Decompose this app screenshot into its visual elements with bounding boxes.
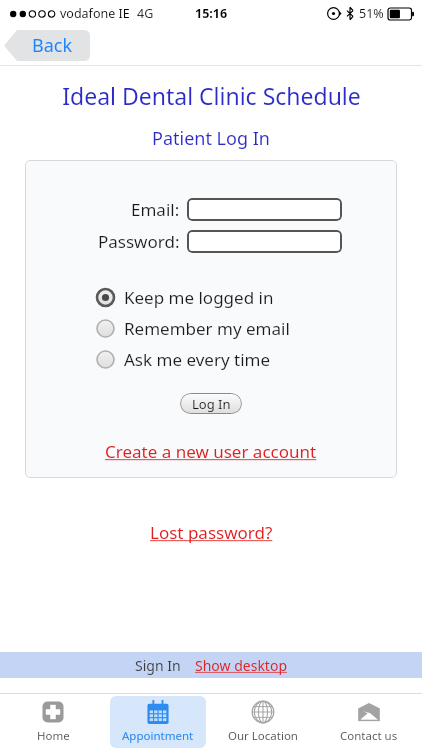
staticText: 15:16 — [195, 5, 228, 22]
staticText: Ask me every time — [124, 348, 270, 371]
staticText: 51% — [359, 5, 384, 22]
other: Our Location — [251, 700, 275, 724]
staticText: Show desktop — [195, 656, 287, 675]
staticText: Remember my email — [124, 317, 290, 340]
staticText: Home — [37, 728, 70, 744]
button[interactable]: Sign In — [135, 656, 181, 675]
button[interactable] — [187, 230, 342, 253]
staticText: Contact us — [340, 728, 398, 744]
button[interactable]: Our Location — [215, 696, 311, 748]
staticText: Ideal Dental Clinic Schedule — [62, 80, 361, 111]
button[interactable]: Back — [4, 30, 90, 61]
button[interactable]: Home — [5, 696, 101, 748]
staticText: Password: — [98, 230, 180, 253]
staticText: vodafone IE — [60, 5, 130, 22]
staticText: Our Location — [228, 728, 298, 744]
button[interactable]: Show desktop — [195, 656, 287, 675]
staticText: Keep me logged in — [124, 286, 274, 309]
staticText: Log In — [192, 395, 231, 413]
other: Contact us — [357, 700, 381, 724]
button[interactable]: Log In — [180, 393, 242, 414]
button[interactable]: Keep me logged in — [96, 286, 326, 309]
button[interactable]: Remember my email — [96, 317, 326, 340]
staticText: 4G — [137, 5, 154, 22]
button[interactable]: Create a new user account — [105, 440, 317, 463]
other: Appointment — [146, 700, 170, 724]
staticText: Back — [32, 33, 73, 58]
staticText: Patient Log In — [152, 126, 270, 151]
staticText: Lost password? — [150, 521, 273, 544]
other: Home — [41, 700, 65, 724]
button[interactable]: Contact us — [321, 696, 417, 748]
staticText: Create a new user account — [105, 440, 317, 463]
staticText: Appointment — [122, 728, 194, 744]
button[interactable] — [187, 198, 342, 221]
button[interactable]: Ask me every time — [96, 348, 326, 371]
button[interactable]: Appointment — [110, 696, 206, 748]
button[interactable]: Lost password? — [150, 521, 273, 544]
staticText: Email: — [131, 198, 180, 221]
staticText: Sign In — [135, 656, 181, 675]
